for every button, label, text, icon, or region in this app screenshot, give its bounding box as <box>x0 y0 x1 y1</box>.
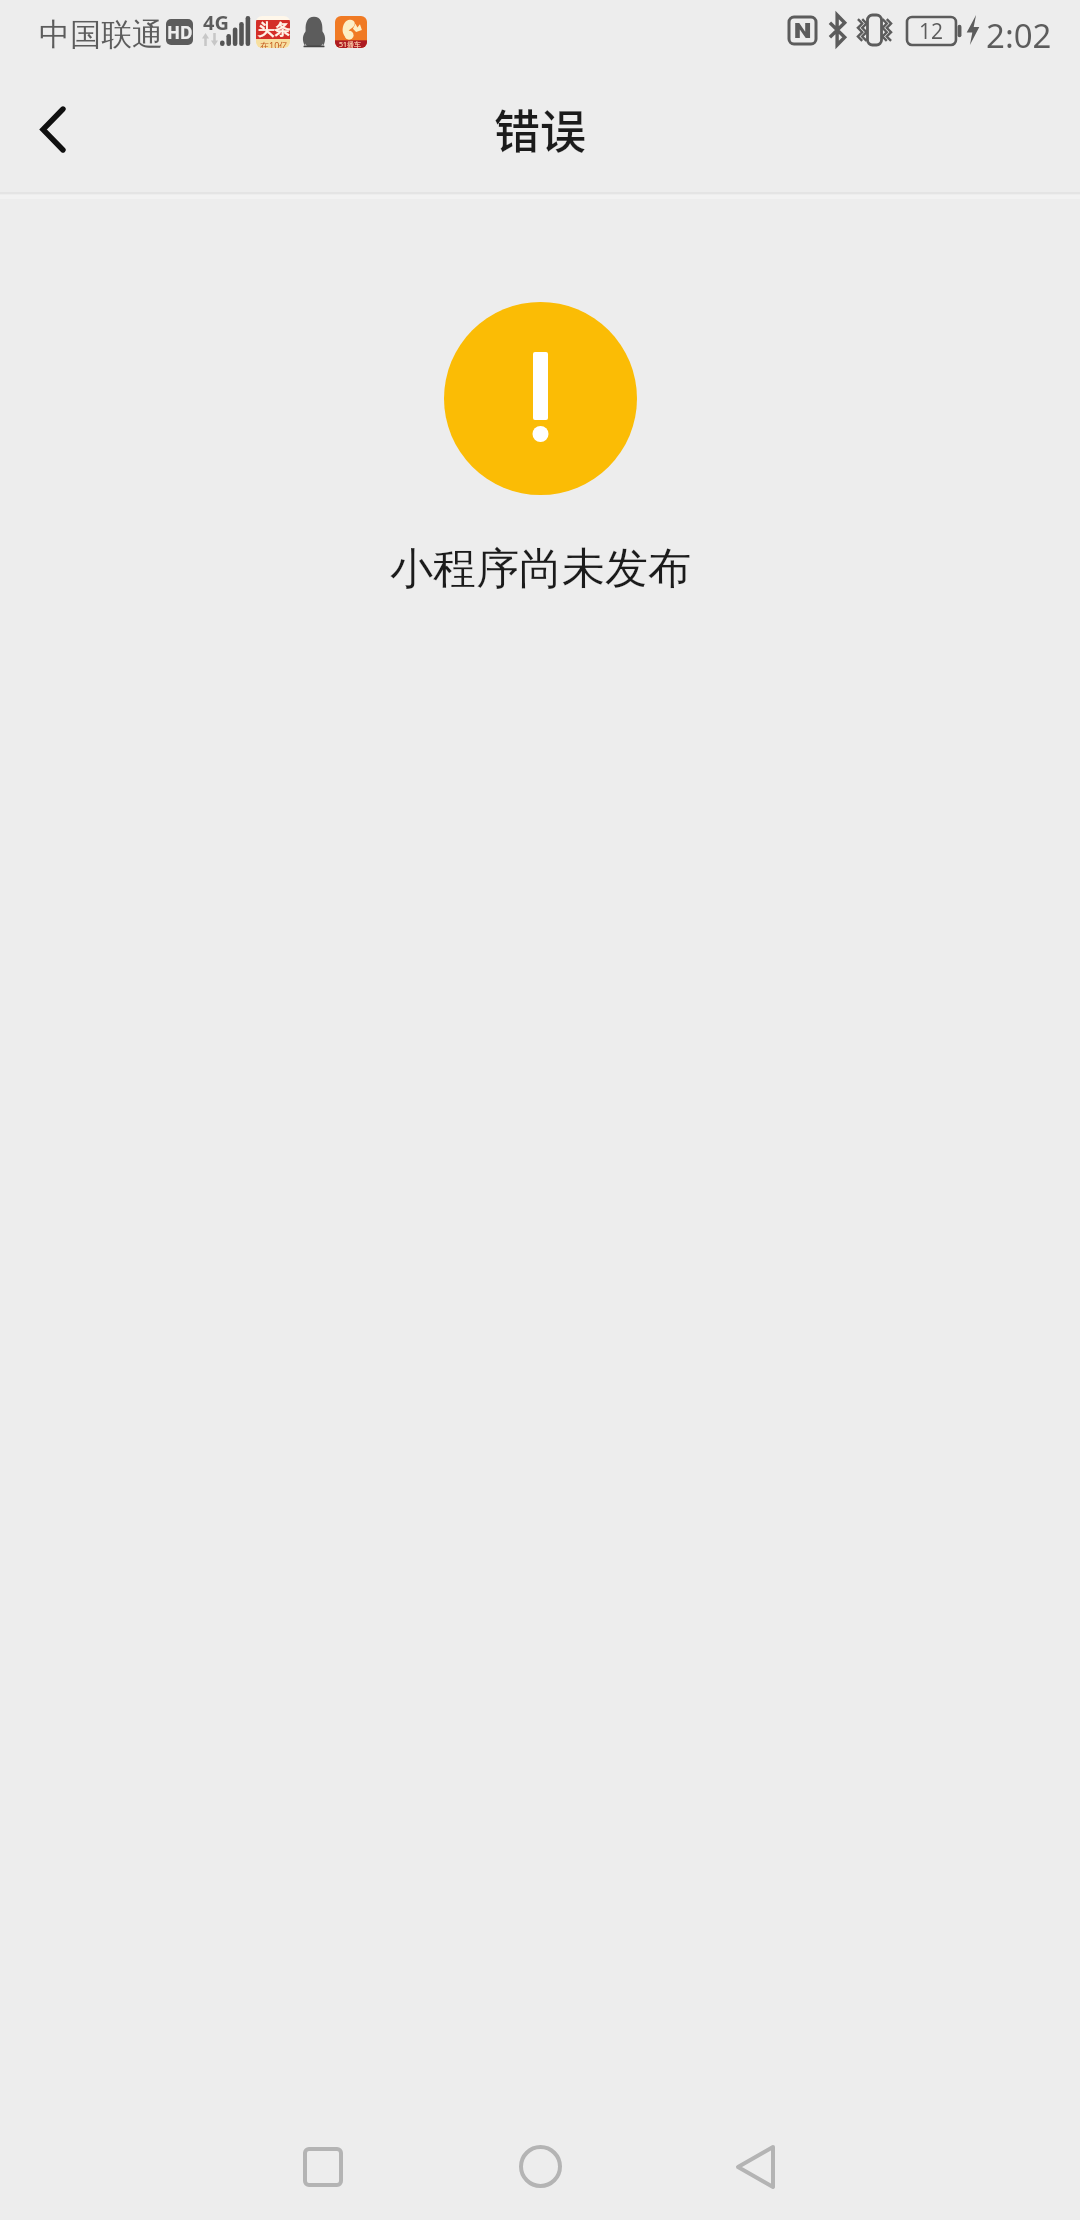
staticText: 51播车 <box>339 40 362 48</box>
staticText: 12 <box>919 17 944 45</box>
button[interactable]: Home <box>480 2113 600 2220</box>
button[interactable]: Back <box>695 2113 815 2220</box>
staticText: 4G <box>203 9 229 36</box>
staticText: 小程序尚未发布 <box>390 542 691 596</box>
staticText: 错误 <box>494 95 586 162</box>
button[interactable]: Back <box>6 66 100 192</box>
staticText: 在10亿 <box>260 39 289 48</box>
staticText: 中国联通 <box>39 15 163 54</box>
staticText: 2:02 <box>986 13 1052 58</box>
button[interactable]: Recents <box>263 2113 383 2220</box>
staticText: 头条 <box>258 20 290 40</box>
staticText: HD <box>167 21 193 44</box>
